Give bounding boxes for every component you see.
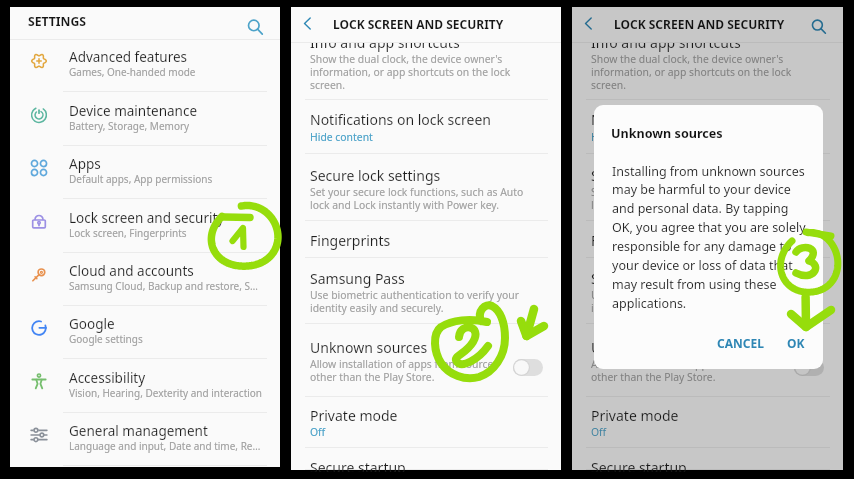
button[interactable]: Apps (10, 146, 280, 199)
button[interactable]: Notifications on lock screen (291, 100, 561, 154)
button[interactable]: CANCEL (712, 329, 768, 357)
button[interactable]: OK (780, 329, 812, 357)
button[interactable]: Back (576, 11, 600, 35)
staticText: Show the dual clock, the device owner's (591, 52, 784, 66)
staticText: Vision, Hearing, Dexterity and interacti… (69, 386, 263, 400)
staticText: Accessibility (69, 369, 146, 387)
staticText: may result from using these (612, 276, 777, 293)
staticText: lock and Lock instantly with Power key. (591, 198, 781, 212)
staticText: information, or app shortcuts on the loc… (591, 65, 792, 79)
staticText: Samsung Cloud, Backup and restore, S… (69, 279, 258, 293)
staticText: Hide content (591, 130, 654, 144)
button[interactable]: Lock screen and security (10, 200, 280, 253)
button[interactable]: Advanced features (10, 39, 280, 92)
button[interactable]: Private mode (291, 396, 561, 448)
button[interactable]: General management (10, 413, 280, 466)
button[interactable]: Fingerprints (572, 220, 843, 258)
button[interactable]: Back (295, 11, 319, 35)
staticText: Hide content (310, 130, 373, 144)
staticText: information, or app shortcuts on the loc… (310, 65, 511, 79)
staticText: Secure startup (310, 458, 406, 472)
button[interactable]: Secure lock settings (572, 154, 843, 221)
button[interactable]: Unknown sources (572, 324, 843, 397)
staticText: Set your secure lock functions, such as … (591, 185, 805, 199)
button[interactable]: Samsung Pass (572, 258, 843, 324)
staticText: identity easily and securely. (310, 301, 444, 315)
staticText: Off (591, 425, 607, 439)
button[interactable]: Secure startup (572, 449, 843, 470)
staticText: Notifications on lock screen (310, 110, 491, 129)
staticText: Samsung Pass (591, 269, 686, 288)
button[interactable]: Cloud and accounts (10, 253, 280, 306)
staticText: OK, you agree that you are solely (612, 219, 806, 236)
staticText: LOCK SCREEN AND SECURITY (614, 16, 785, 32)
button[interactable]: Google (10, 306, 280, 359)
button[interactable]: Accessibility (10, 360, 280, 413)
staticText: Allow installation of apps from sources (591, 357, 780, 371)
staticText: Samsung Pass (310, 269, 405, 288)
staticText: Unknown sources (310, 338, 428, 357)
staticText: Google settings (69, 332, 143, 346)
staticText: Set your secure lock functions, such as … (310, 185, 524, 199)
button[interactable]: Private mode (572, 396, 843, 448)
staticText: and personal data. By tapping (612, 200, 789, 217)
staticText: Default apps, App permissions (69, 172, 213, 186)
staticText: other than the Play Store. (310, 370, 435, 384)
staticText: lock and Lock instantly with Power key. (310, 198, 500, 212)
staticText: LOCK SCREEN AND SECURITY (333, 16, 504, 32)
staticText: identity easily and securely. (591, 301, 725, 315)
staticText: your device or loss of data that (612, 257, 793, 274)
staticText: Cloud and accounts (69, 262, 194, 280)
staticText: Secure lock settings (591, 166, 722, 185)
staticText: Apps (69, 155, 101, 173)
staticText: screen. (591, 78, 626, 92)
button[interactable]: Secure lock settings (291, 154, 561, 221)
staticText: responsible for any damage to (612, 238, 792, 255)
staticText: Unknown sources (591, 338, 709, 357)
staticText: CANCEL (717, 335, 764, 351)
staticText: Info and app shortcuts (591, 33, 741, 52)
button[interactable]: Unknown sources (291, 324, 561, 397)
staticText: Advanced features (69, 48, 188, 66)
staticText: Use biometric authentication to verify y… (591, 288, 800, 302)
staticText: applications. (612, 295, 687, 312)
button[interactable]: Samsung Pass (291, 258, 561, 324)
staticText: Lock screen, Fingerprints (69, 226, 187, 240)
staticText: Installing from unknown sources (612, 163, 805, 180)
staticText: Google (69, 315, 115, 333)
staticText: screen. (310, 78, 345, 92)
button[interactable]: Fingerprints (291, 220, 561, 258)
staticText: Private mode (310, 406, 398, 425)
staticText: Show the dual clock, the device owner's (310, 52, 503, 66)
button[interactable]: Info and app shortcuts (572, 32, 843, 100)
staticText: other than the Play Store. (591, 370, 716, 384)
staticText: may be harmful to your device (612, 181, 791, 198)
staticText: Use biometric authentication to verify y… (310, 288, 519, 302)
staticText: Secure lock settings (310, 166, 441, 185)
staticText: Battery, Storage, Memory (69, 119, 190, 133)
staticText: Fingerprints (591, 231, 672, 250)
button[interactable]: Info and app shortcuts (291, 32, 561, 100)
staticText: Lock screen and security (69, 209, 225, 227)
staticText: OK (787, 335, 805, 351)
staticText: Notifications on lock screen (591, 110, 772, 129)
staticText: Device maintenance (69, 102, 198, 120)
button[interactable]: Device maintenance (10, 93, 280, 146)
staticText: Games, One-handed mode (69, 65, 196, 79)
staticText: Fingerprints (310, 231, 391, 250)
staticText: General management (69, 422, 208, 440)
staticText: Language and input, Date and time, Re… (69, 439, 261, 453)
staticText: Unknown sources (611, 125, 723, 142)
staticText: Off (310, 425, 326, 439)
button[interactable]: Search (807, 15, 831, 39)
staticText: Allow installation of apps from sources (310, 357, 499, 371)
button[interactable]: Secure startup (291, 449, 561, 470)
staticText: Info and app shortcuts (310, 33, 460, 52)
button[interactable]: Search (243, 15, 267, 39)
staticText: Secure startup (591, 458, 687, 472)
button[interactable]: Notifications on lock screen (572, 100, 843, 154)
staticText: SETTINGS (28, 13, 87, 30)
staticText: Private mode (591, 406, 679, 425)
